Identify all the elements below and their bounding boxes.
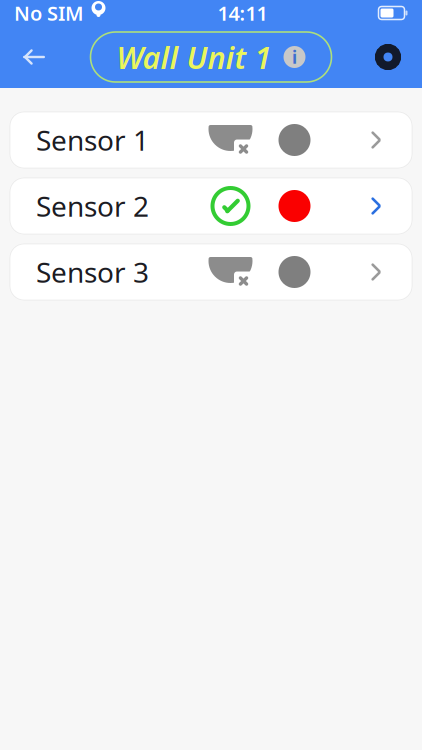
button[interactable]: Settings: [362, 34, 414, 80]
staticText: No SIM: [14, 0, 84, 26]
button[interactable]: Wall Unit 1: [90, 32, 331, 82]
staticText: i: [292, 45, 297, 68]
button[interactable]: Sensor 2: [10, 178, 412, 234]
button[interactable]: Sensor 1: [10, 112, 412, 168]
button[interactable]: Back: [8, 34, 60, 80]
button[interactable]: Sensor 3: [10, 244, 412, 300]
staticText: 14:11: [217, 0, 267, 26]
staticText: Sensor 3: [36, 253, 149, 291]
staticText: Wall Unit 1: [116, 37, 271, 77]
staticText: Sensor 1: [36, 121, 149, 159]
staticText: Sensor 2: [36, 187, 149, 225]
